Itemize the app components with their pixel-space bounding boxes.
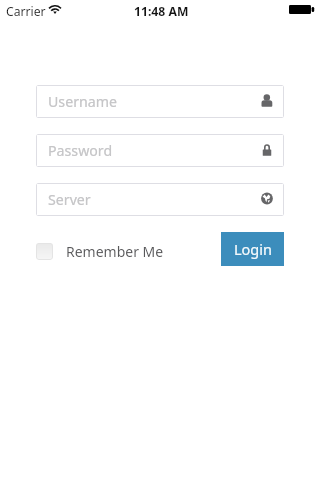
staticText: Server	[48, 190, 91, 209]
button[interactable]: Login	[221, 232, 284, 266]
button[interactable]: Password	[36, 134, 284, 167]
other: Battery full	[289, 5, 315, 14]
other: Wi-Fi signal	[49, 5, 61, 14]
other: Server address	[261, 192, 273, 205]
button[interactable]: Username	[36, 85, 284, 118]
other: User name	[261, 94, 273, 107]
other: Password	[261, 143, 273, 156]
staticText: 11:48 AM	[134, 3, 189, 20]
staticText: Remember Me	[66, 242, 164, 260]
staticText: Password	[48, 141, 113, 160]
staticText: Username	[48, 92, 118, 111]
button[interactable]: Server	[36, 183, 284, 216]
staticText: Login	[234, 239, 272, 259]
button[interactable]: Remember Me	[36, 242, 164, 260]
staticText: Carrier	[6, 3, 46, 20]
